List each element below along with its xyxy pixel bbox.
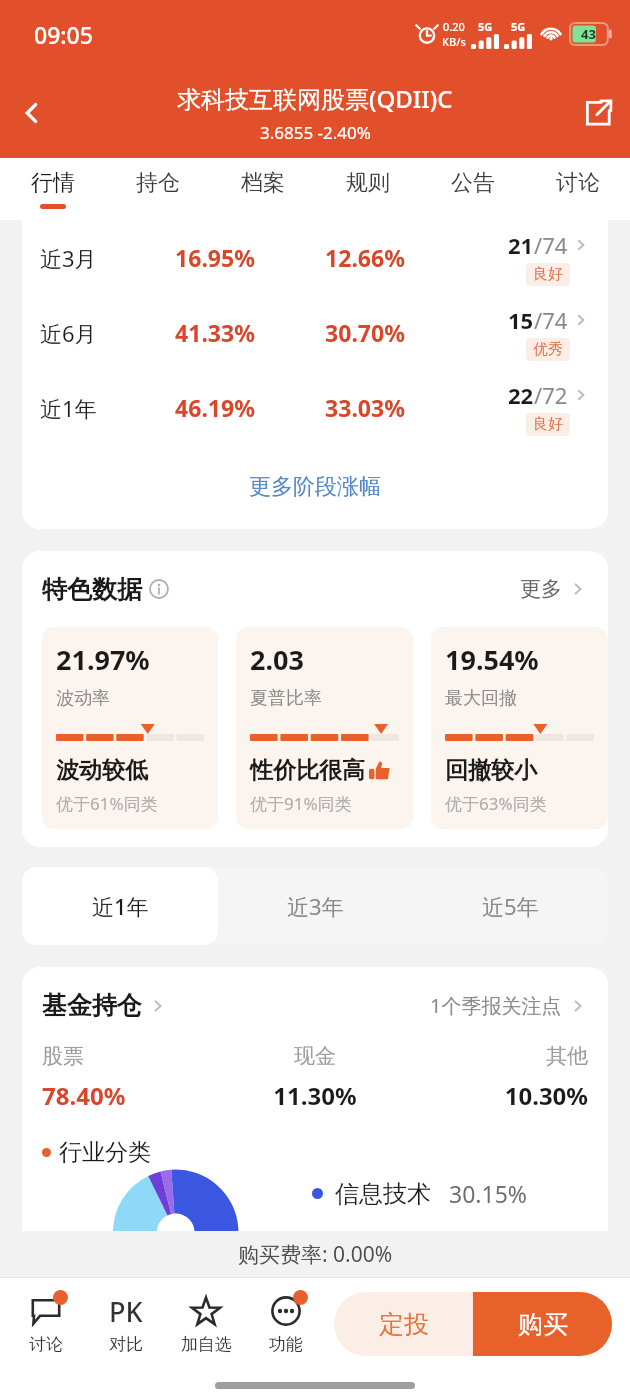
button[interactable]: 近3月 bbox=[22, 220, 608, 295]
staticText: 优于63%同类 bbox=[445, 792, 547, 815]
staticText: 购买 bbox=[518, 1309, 568, 1340]
staticText: 近5年 bbox=[482, 891, 539, 921]
staticText: 21.97% bbox=[56, 641, 150, 678]
staticText: 回撤较小 bbox=[445, 756, 537, 785]
staticText: 22 bbox=[508, 380, 534, 410]
staticText: 加自选 bbox=[181, 1334, 232, 1355]
button[interactable]: 近1年 bbox=[22, 867, 218, 945]
staticText: 行业分类 bbox=[59, 1138, 151, 1167]
button[interactable]: Back bbox=[0, 81, 64, 145]
staticText: 0.20 bbox=[443, 19, 465, 34]
staticText: 近3月 bbox=[40, 243, 140, 273]
staticText: 信息技术 bbox=[335, 1179, 431, 1209]
staticText: 更多阶段涨幅 bbox=[249, 473, 381, 501]
button[interactable]: 近3年 bbox=[218, 867, 413, 945]
staticText: 19.54% bbox=[445, 641, 539, 678]
staticText: 5G bbox=[478, 19, 493, 34]
button[interactable]: 近6月 bbox=[22, 295, 608, 370]
staticText: 讨论 bbox=[556, 169, 600, 197]
button[interactable]: 更多 bbox=[520, 576, 588, 602]
staticText: 档案 bbox=[241, 169, 285, 197]
staticText: 优于91%同类 bbox=[250, 792, 352, 815]
staticText: 3.6855 -2.40% bbox=[260, 121, 371, 144]
staticText: /74 bbox=[534, 305, 568, 335]
staticText: 特色数据 bbox=[42, 574, 142, 605]
button[interactable]: 近5年 bbox=[413, 867, 608, 945]
staticText: 定投 bbox=[379, 1309, 429, 1340]
staticText: 12.66% bbox=[290, 242, 440, 273]
button[interactable]: 19.54% bbox=[431, 627, 608, 829]
staticText: 33.03% bbox=[290, 392, 440, 423]
staticText: 1个季报关注点 bbox=[430, 992, 562, 1019]
button[interactable]: 基金持仓 bbox=[42, 990, 168, 1021]
staticText: 10.30% bbox=[406, 1079, 588, 1112]
staticText: 近3年 bbox=[287, 891, 344, 921]
staticText: 公告 bbox=[451, 169, 495, 197]
staticText: 30.15% bbox=[449, 1178, 527, 1209]
button[interactable]: 2.03 bbox=[236, 627, 413, 829]
staticText: 09:05 bbox=[34, 19, 93, 50]
staticText: 良好 bbox=[533, 415, 563, 434]
staticText: 优于61%同类 bbox=[56, 792, 158, 815]
staticText: 近1年 bbox=[92, 891, 149, 921]
button[interactable]: 公告 bbox=[420, 158, 525, 220]
staticText: 规则 bbox=[346, 169, 390, 197]
staticText: 30.70% bbox=[290, 317, 440, 348]
button[interactable]: 近1年 bbox=[22, 370, 608, 445]
staticText: 行情 bbox=[31, 169, 75, 197]
staticText: 优秀 bbox=[533, 340, 563, 359]
staticText: 购买费率: 0.00% bbox=[238, 1240, 393, 1269]
staticText: 讨论 bbox=[29, 1334, 63, 1355]
staticText: 求科技互联网股票(QDII)C bbox=[177, 82, 453, 115]
button[interactable]: Share bbox=[566, 81, 630, 145]
staticText: 性价比很高 bbox=[250, 756, 365, 785]
staticText: 最大回撤 bbox=[445, 687, 517, 710]
staticText: KB/s bbox=[442, 34, 466, 49]
staticText: 股票 bbox=[42, 1043, 224, 1069]
staticText: 波动率 bbox=[56, 687, 110, 710]
staticText: 更多 bbox=[520, 576, 562, 602]
staticText: 43 bbox=[581, 25, 596, 43]
staticText: 持仓 bbox=[136, 169, 180, 197]
button[interactable]: 持仓 bbox=[105, 158, 210, 220]
button[interactable]: PK bbox=[86, 1278, 166, 1370]
staticText: /72 bbox=[534, 380, 568, 410]
staticText: 近1年 bbox=[40, 393, 140, 423]
staticText: 21 bbox=[508, 230, 534, 260]
staticText: 夏普比率 bbox=[250, 687, 322, 710]
button[interactable]: 行情 bbox=[0, 158, 105, 220]
staticText: 15 bbox=[508, 305, 534, 335]
button[interactable]: 讨论 bbox=[525, 158, 630, 220]
button[interactable]: 定投 bbox=[334, 1292, 473, 1356]
staticText: 16.95% bbox=[140, 242, 290, 273]
button[interactable]: 档案 bbox=[210, 158, 315, 220]
staticText: 其他 bbox=[406, 1043, 588, 1069]
staticText: /74 bbox=[534, 230, 568, 260]
staticText: 功能 bbox=[269, 1334, 303, 1355]
staticText: 2.03 bbox=[250, 641, 304, 678]
staticText: 现金 bbox=[224, 1043, 406, 1069]
staticText: 5G bbox=[511, 19, 526, 34]
staticText: 46.19% bbox=[140, 392, 290, 423]
button[interactable]: 规则 bbox=[315, 158, 420, 220]
button[interactable]: 21.97% bbox=[42, 627, 218, 829]
staticText: 波动较低 bbox=[56, 756, 148, 785]
button[interactable]: 购买 bbox=[473, 1292, 612, 1356]
staticText: 基金持仓 bbox=[42, 990, 142, 1021]
staticText: 78.40% bbox=[42, 1079, 224, 1112]
staticText: 近6月 bbox=[40, 318, 140, 348]
staticText: 41.33% bbox=[140, 317, 290, 348]
button[interactable]: 更多阶段涨幅 bbox=[22, 445, 608, 529]
button[interactable]: 加自选 bbox=[166, 1278, 246, 1370]
button[interactable]: 1个季报关注点 bbox=[430, 992, 588, 1019]
staticText: 11.30% bbox=[224, 1079, 406, 1112]
staticText: 良好 bbox=[533, 265, 563, 284]
button[interactable]: 功能 bbox=[246, 1278, 326, 1370]
staticText: 对比 bbox=[109, 1334, 143, 1355]
button[interactable]: 讨论 bbox=[6, 1278, 86, 1370]
staticText: PK bbox=[109, 1293, 143, 1329]
